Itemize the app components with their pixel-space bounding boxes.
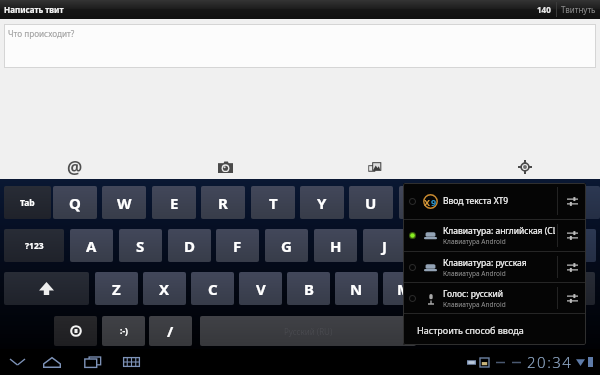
staticText: T [269, 193, 278, 213]
button[interactable]: I [399, 186, 443, 219]
staticText: E [170, 193, 179, 213]
staticText: R [218, 193, 228, 213]
button[interactable]: ?123 [4, 229, 64, 262]
button[interactable]: Mention [0, 155, 150, 179]
staticText: Клавиатура: английская (CL [443, 225, 555, 237]
button[interactable]: Tab [4, 186, 51, 219]
button[interactable]: A [70, 229, 113, 262]
button[interactable]: M [383, 272, 426, 305]
button[interactable]: Y [300, 186, 344, 219]
button[interactable]: Settings [558, 183, 586, 219]
button[interactable]: T [251, 186, 295, 219]
staticText: K [428, 236, 438, 256]
button[interactable]: Z [95, 272, 138, 305]
button[interactable]: O [448, 186, 492, 219]
button[interactable]: Shift [4, 272, 89, 305]
button[interactable]: Что происходит? [4, 24, 596, 68]
staticText: Tab [20, 197, 35, 209]
staticText: H [330, 236, 342, 256]
staticText: S [136, 236, 145, 256]
staticText: X [159, 279, 170, 299]
staticText: V [256, 279, 266, 299]
staticText: Q [69, 193, 81, 213]
button[interactable]: Backspace [547, 186, 600, 219]
staticText: @ [67, 156, 83, 179]
button[interactable]: C [191, 272, 234, 305]
button[interactable]: Camera [150, 155, 300, 179]
staticText: Написать твит [4, 4, 64, 15]
button[interactable]: / [149, 316, 192, 346]
button[interactable]: D [168, 229, 211, 262]
staticText: , [450, 279, 455, 299]
staticText: Клавиатура Android [443, 269, 506, 278]
button[interactable]: B [287, 272, 330, 305]
button[interactable]: S [119, 229, 162, 262]
staticText: . [498, 279, 503, 299]
button[interactable]: Input settings [54, 316, 97, 346]
button[interactable]: Settings [558, 252, 586, 282]
button[interactable]: Голос: русский [403, 283, 586, 313]
button[interactable]: Клавиатура: английская (CL [403, 220, 586, 251]
button[interactable]: :-) [102, 316, 145, 346]
button[interactable]: F [216, 229, 259, 262]
staticText: ?123 [25, 240, 44, 252]
staticText: J [382, 236, 387, 256]
button[interactable]: , [431, 272, 474, 305]
other: Message [467, 358, 476, 367]
staticText: Z [112, 279, 121, 299]
button[interactable]: Shift [527, 272, 595, 305]
button[interactable]: K [411, 229, 454, 262]
button[interactable]: Space [200, 316, 416, 346]
staticText: I [418, 193, 424, 213]
staticText: :-) [120, 325, 128, 337]
staticText: Ввод текста XT9 [443, 195, 509, 207]
staticText: Клавиатура Android [443, 300, 506, 309]
staticText: Твитнуть [561, 4, 596, 15]
button[interactable]: Настроить способ ввода [403, 314, 586, 345]
button[interactable]: . [479, 272, 522, 305]
button[interactable]: U [349, 186, 393, 219]
button[interactable]: W [102, 186, 146, 219]
staticText: Клавиатура Android [443, 237, 506, 246]
other: Sync [512, 358, 521, 367]
button[interactable]: Location [450, 155, 600, 179]
staticText: 20:34 [527, 352, 573, 372]
button[interactable]: N [335, 272, 378, 305]
button[interactable]: L [460, 229, 503, 262]
staticText: Голос: русский [443, 288, 504, 300]
button[interactable]: Клавиатура: русская [403, 252, 586, 282]
staticText: 140 [537, 4, 551, 15]
button[interactable]: J [363, 229, 406, 262]
button[interactable]: R [201, 186, 245, 219]
staticText: C [208, 279, 218, 299]
staticText: M [397, 279, 412, 299]
staticText: G [281, 236, 292, 256]
button[interactable]: P [498, 186, 542, 219]
button[interactable]: Switch keyboard [118, 352, 144, 372]
button[interactable]: Твитнуть [557, 0, 600, 19]
button[interactable]: X [143, 272, 186, 305]
button[interactable]: Settings [558, 220, 586, 251]
staticText: L [477, 236, 486, 256]
button[interactable]: Home [39, 352, 65, 372]
staticText: B [304, 279, 314, 299]
button[interactable]: Enter [509, 229, 596, 262]
button[interactable]: V [239, 272, 282, 305]
staticText: U [365, 193, 377, 213]
button[interactable]: G [265, 229, 308, 262]
button[interactable]: Q [53, 186, 97, 219]
button[interactable]: Recent apps [79, 352, 105, 372]
staticText: Y [317, 193, 327, 213]
staticText: A [86, 236, 97, 256]
staticText: O [464, 193, 476, 213]
button[interactable]: Settings [558, 283, 586, 313]
button[interactable]: H [314, 229, 357, 262]
button[interactable]: Hide keyboard [4, 352, 30, 372]
button[interactable]: X [403, 183, 586, 219]
staticText: 9 [431, 196, 437, 208]
staticText: N [350, 279, 363, 299]
button[interactable]: Gallery [300, 155, 450, 179]
button[interactable]: E [152, 186, 196, 219]
other: Sync [496, 358, 505, 367]
